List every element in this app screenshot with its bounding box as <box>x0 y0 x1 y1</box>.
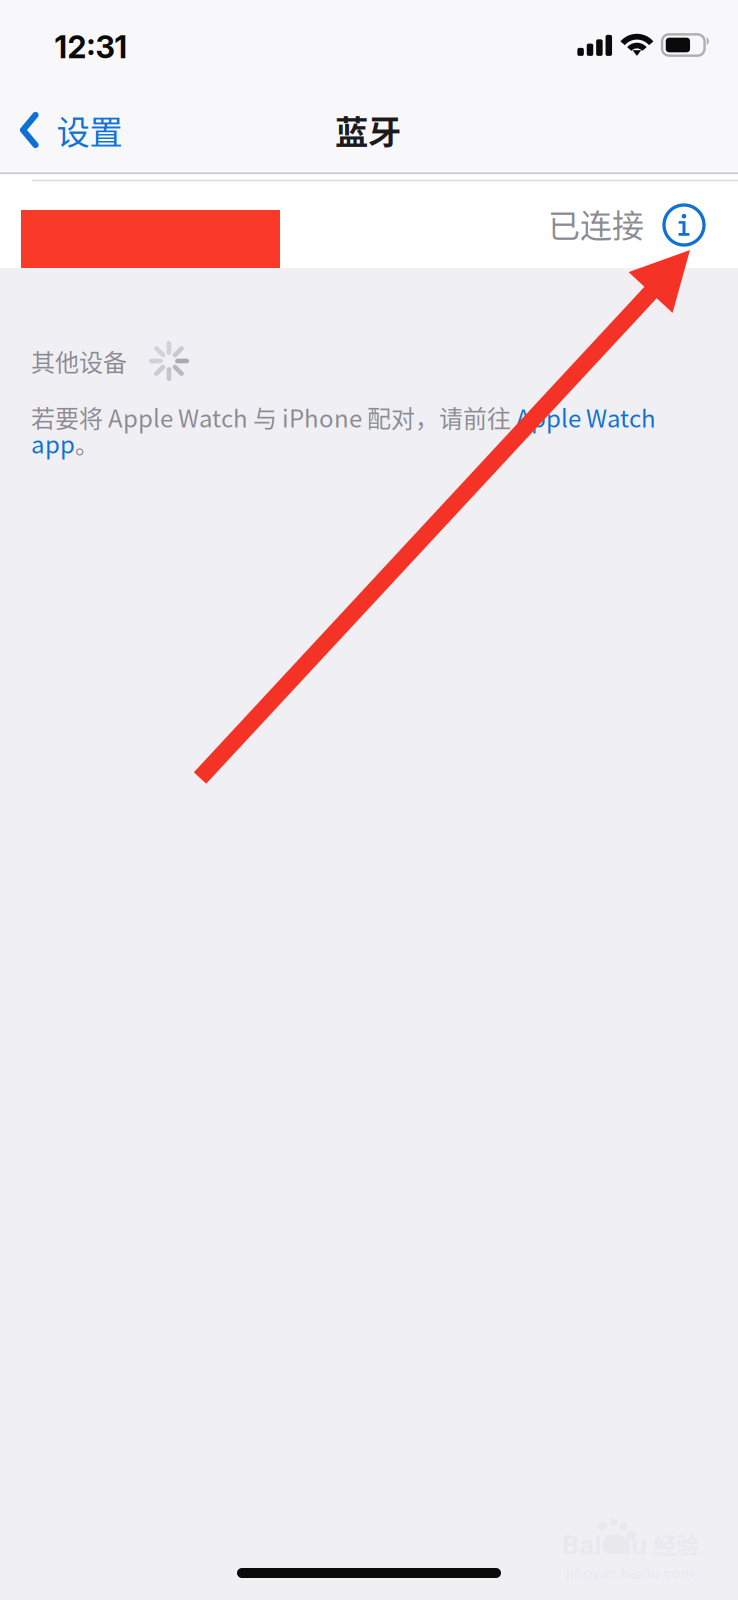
staticText: 设置 <box>56 106 122 154</box>
staticText: 蓝牙 <box>335 106 401 154</box>
staticText: 已连接 <box>548 200 644 247</box>
staticText: Apple Watch <box>516 400 656 434</box>
staticText: 12:31 <box>54 28 127 65</box>
button[interactable]: app <box>31 426 75 460</box>
staticText: du <box>615 1530 647 1560</box>
staticText: app <box>31 426 75 460</box>
staticText: 。 <box>75 426 99 460</box>
staticText: 经验 <box>653 1528 699 1560</box>
button[interactable]: 设置 <box>0 86 150 174</box>
staticText: 若要将 Apple Watch 与 iPhone 配对，请前往 <box>31 400 516 434</box>
button[interactable]: 已连接 <box>0 182 738 268</box>
staticText: 其他设备 <box>31 344 127 378</box>
staticText: Bai <box>562 1530 601 1560</box>
